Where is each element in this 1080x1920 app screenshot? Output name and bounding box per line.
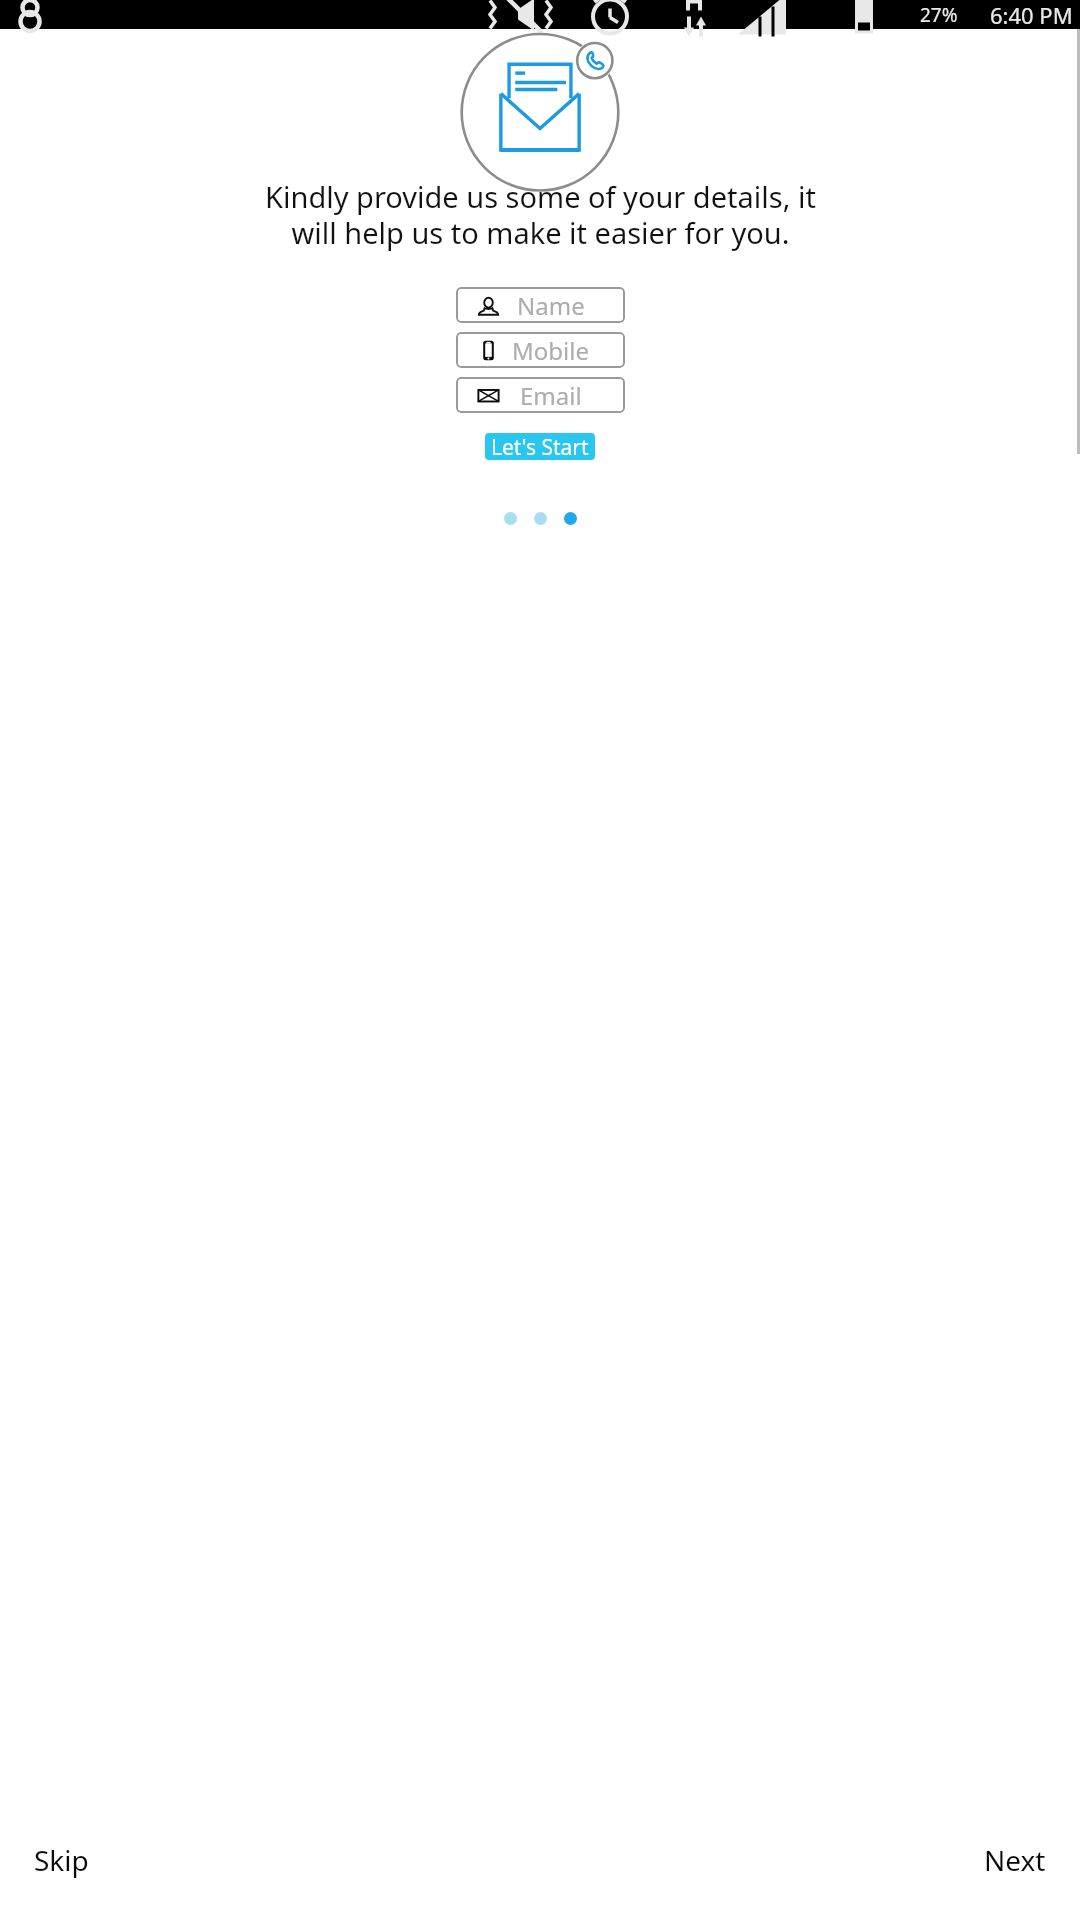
staticText: Email [520,379,582,412]
staticText: 6:40 PM [990,0,1073,29]
button[interactable]: Page indicator [504,512,517,525]
button[interactable]: Skip [22,1833,101,1887]
staticText: Next [984,1841,1046,1879]
staticText: 27% [920,2,958,28]
button[interactable]: Let's Start [485,433,595,460]
button[interactable]: Page indicator [534,512,547,525]
staticText: Name [517,289,585,322]
button[interactable]: Name [456,287,625,323]
button[interactable]: Next [972,1833,1058,1887]
button[interactable]: Mobile [456,332,625,368]
staticText: Skip [34,1841,89,1879]
button[interactable]: Email [456,377,625,413]
staticText: Mobile [512,334,589,367]
button[interactable]: Page indicator [564,512,577,525]
staticText: Kindly provide us some of your details, … [265,177,816,253]
staticText: Let's Start [491,433,589,460]
